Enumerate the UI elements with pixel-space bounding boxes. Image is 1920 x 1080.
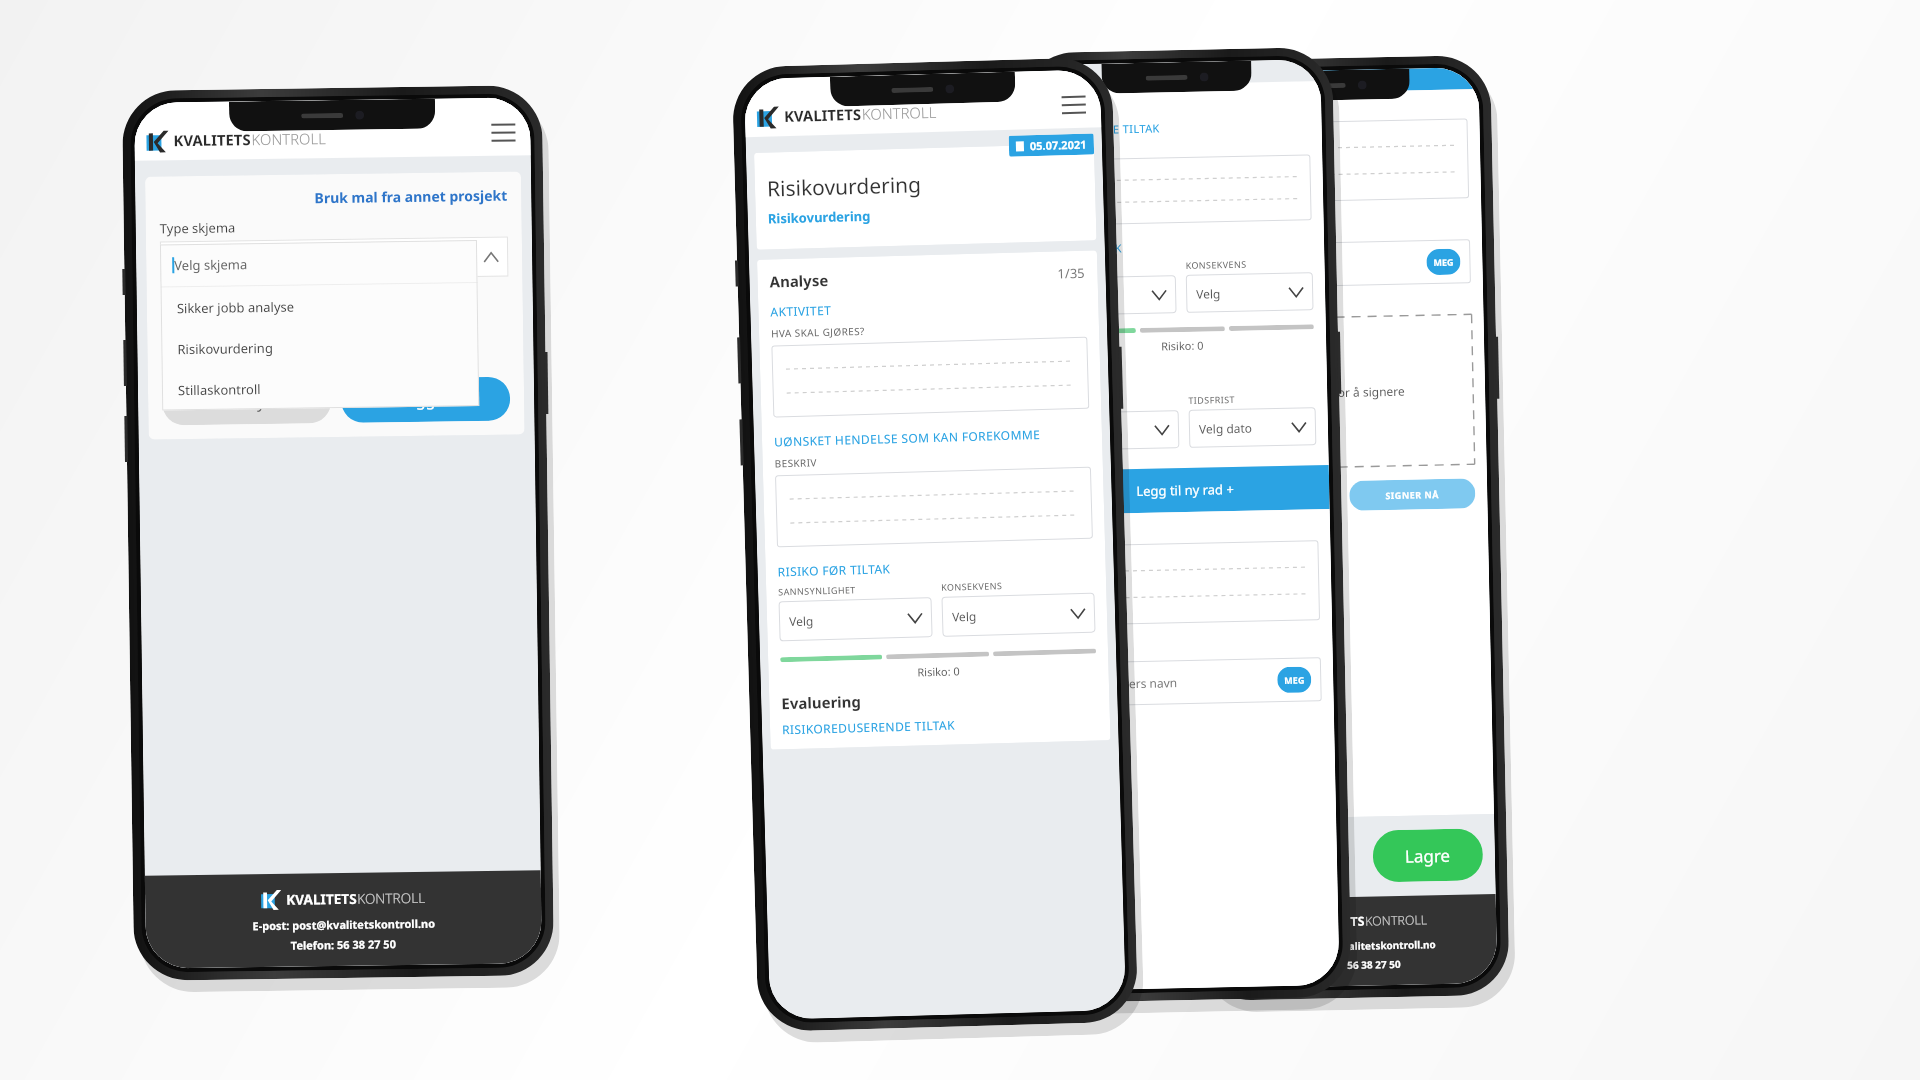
staticText: Legg til: [398, 388, 454, 411]
button[interactable]: [1049, 275, 1177, 316]
staticText: KONTROLL: [357, 888, 425, 908]
button[interactable]: Velg: [778, 597, 933, 641]
button[interactable]: [1052, 410, 1179, 451]
staticText: KVALITETS: [1300, 913, 1365, 931]
staticText: EDUSERENDE TILTAK: [1045, 120, 1161, 138]
button[interactable]: Velg: [941, 593, 1096, 637]
staticText: Evaluering: [781, 691, 862, 713]
staticText: Analyse: [769, 270, 829, 291]
staticText: Legg til ny rad +: [1136, 480, 1234, 500]
staticText: MEG: [1284, 673, 1305, 686]
staticText: 1/35: [1057, 264, 1086, 282]
staticText: KVALITETS: [784, 104, 862, 126]
staticText: Velg: [952, 608, 977, 625]
button[interactable]: MEG: [1277, 666, 1311, 693]
staticText: KONSEKVENS: [1185, 258, 1247, 271]
staticText: MEG: [1433, 256, 1454, 268]
staticText: HVA SKAL GJØRES?: [771, 324, 865, 340]
staticText: SANNSYNLIGHET: [778, 583, 856, 597]
button[interactable]: Lagre: [1372, 828, 1483, 882]
button[interactable]: Velg skjema: [160, 237, 508, 281]
staticText: r: [1051, 368, 1058, 387]
button[interactable]: Legg til ny rad +: [1041, 465, 1330, 515]
staticText: Lagre: [1405, 844, 1451, 868]
staticText: ETTER TILTAK: [1048, 240, 1122, 257]
button[interactable]: Sikker jobb analyse: [161, 283, 478, 328]
button[interactable]: Underskrivers navn: [1057, 657, 1322, 707]
button[interactable]: Legg til: [341, 377, 510, 423]
button[interactable]: SIGNER NÅ: [1349, 478, 1476, 511]
staticText: Underskrivers navn: [1067, 674, 1177, 692]
button[interactable]: Trykk her for å signere: [1208, 314, 1475, 470]
button[interactable]: Velg dato: [1189, 407, 1316, 448]
staticText: SIGNER NÅ: [1385, 488, 1439, 501]
staticText: 21: [1207, 298, 1220, 314]
button[interactable]: Velg: [1186, 272, 1314, 313]
staticText: Risikovurdering: [767, 170, 922, 203]
staticText: Velg skjema: [174, 255, 247, 274]
staticText: Velg dato: [1199, 420, 1253, 437]
staticText: Telefon: 56 38 27 50: [291, 936, 397, 953]
staticText: 05.07.2021: [1030, 137, 1087, 153]
button[interactable]: Menu: [488, 117, 519, 148]
staticText: RISIKOREDUSERENDE TILTAK: [782, 716, 955, 737]
staticText: KONTROLL: [251, 128, 327, 149]
staticText: Risiko: 0: [1050, 335, 1314, 356]
button[interactable]: Avbryt: [162, 379, 331, 425]
staticText: TUR: [1056, 639, 1080, 655]
staticText: Avbryt: [222, 391, 271, 414]
button[interactable]: MEG: [1426, 248, 1461, 275]
staticText: Velg: [789, 612, 814, 629]
staticText: nderskrivers navn: [1216, 256, 1319, 275]
staticText: E-post: post@kvalitetskontroll.no: [252, 916, 436, 933]
button[interactable]: IGNER SENERE: [1211, 481, 1338, 514]
button[interactable]: nderskrivers navn: [1206, 239, 1471, 289]
staticText: Velg: [1196, 285, 1221, 302]
staticText: Velg skjema: [172, 251, 245, 270]
staticText: Type skjema: [160, 218, 236, 237]
staticText: RISIKO FØR TILTAK: [777, 560, 891, 579]
staticText: Trykk her for å signere: [1278, 383, 1405, 401]
staticText: KONTROLL: [862, 102, 937, 124]
staticText: Risiko: 0: [780, 659, 1097, 683]
staticText: Risikovurdering: [768, 207, 871, 228]
button[interactable]: Bruk mal fra annet prosjekt: [159, 186, 507, 209]
staticText: Stillaskontroll: [178, 380, 261, 399]
staticText: R: [1206, 222, 1214, 237]
staticText: Risikovurdering: [177, 339, 273, 358]
staticText: KONSEKVENS: [941, 579, 1002, 593]
staticText: TILTAK: [1046, 143, 1077, 156]
button[interactable]: 05.07.2021: [1009, 133, 1094, 157]
staticText: AKTIVITET: [770, 302, 832, 319]
button[interactable]: Stillaskontroll: [162, 365, 479, 410]
staticText: UØNSKET HENDELSE SOM KAN FOREKOMME: [774, 426, 1041, 449]
staticText: Sikker jobb analyse: [177, 298, 295, 317]
staticText: E-post: post@kvalitetskontroll.no: [1270, 937, 1436, 955]
staticText: er (0/10): [1212, 527, 1256, 543]
staticText: Telefon: 56 38 27 50: [1305, 957, 1401, 973]
staticText: KVALITETS: [173, 129, 252, 150]
staticText: KVALITETS: [286, 889, 357, 909]
staticText: TIDSFRIST: [1188, 393, 1235, 406]
staticText: ILIGHET: [1048, 261, 1086, 274]
staticText: KONTROLL: [1365, 911, 1427, 930]
button[interactable]: Menu: [1058, 89, 1089, 120]
button[interactable]: Risikovurdering: [161, 324, 479, 369]
staticText: BESKRIV: [774, 455, 818, 470]
staticText: ENTAR: [1054, 524, 1090, 540]
staticText: IG: [1051, 397, 1062, 409]
